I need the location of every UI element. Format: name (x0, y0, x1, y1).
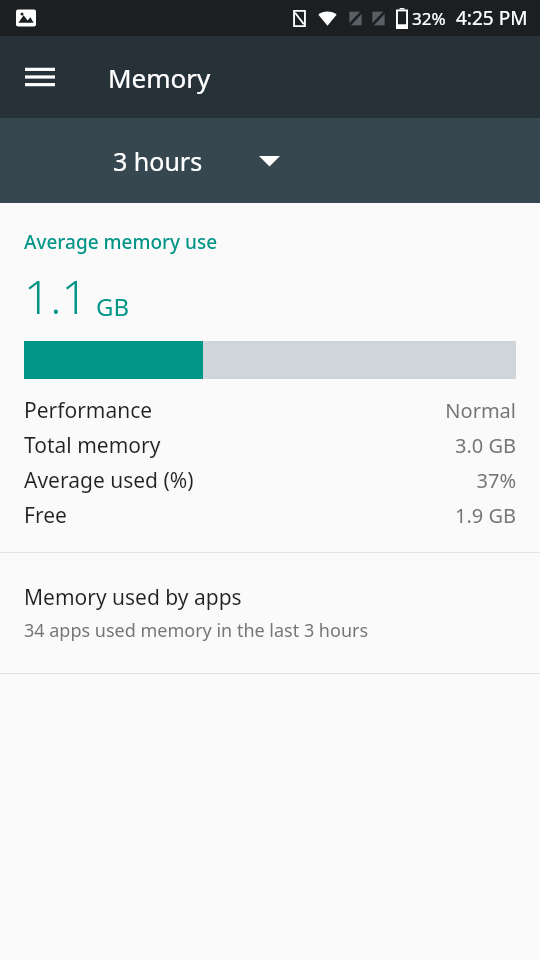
staticText: 1.1 (24, 265, 88, 328)
staticText: Memory (108, 60, 211, 95)
staticText: Average used (%) (24, 466, 194, 495)
button[interactable]: Memory used by apps (0, 553, 540, 673)
staticText: 37% (476, 467, 516, 494)
staticText: 1.9 GB (455, 502, 516, 529)
staticText: Average memory use (24, 229, 218, 255)
staticText: 4:25 PM (456, 5, 528, 31)
staticText: Total memory (24, 431, 161, 460)
button[interactable]: Free (0, 498, 540, 533)
staticText: Memory used by apps (24, 583, 242, 612)
button[interactable]: Performance (0, 393, 540, 428)
staticText: Performance (24, 396, 153, 425)
button[interactable]: Average used (%) (0, 463, 540, 498)
staticText: GB (96, 290, 130, 323)
staticText: 34 apps used memory in the last 3 hours (24, 618, 369, 643)
staticText: 3 hours (113, 144, 203, 178)
staticText: Normal (445, 397, 516, 424)
staticText: 32% (412, 7, 446, 30)
staticText: 3.0 GB (455, 432, 516, 459)
button[interactable]: Total memory (0, 428, 540, 463)
button[interactable]: Open navigation menu (12, 49, 68, 105)
button[interactable]: 3 hours (105, 136, 288, 186)
staticText: Free (24, 501, 67, 530)
